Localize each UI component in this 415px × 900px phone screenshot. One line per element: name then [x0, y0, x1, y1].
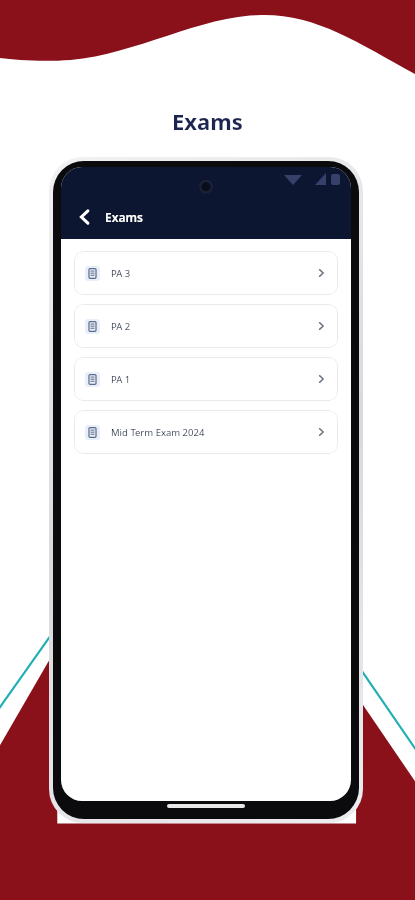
staticText: PA 2 — [111, 320, 131, 333]
button[interactable]: Back — [69, 201, 101, 233]
staticText: PA 1 — [111, 373, 131, 386]
button[interactable]: PA 2 — [74, 304, 338, 348]
staticText: Exams — [172, 106, 243, 136]
button[interactable]: PA 1 — [74, 357, 338, 401]
button[interactable]: Mid Term Exam 2024 — [74, 410, 338, 454]
staticText: Mid Term Exam 2024 — [111, 426, 205, 439]
button[interactable]: PA 3 — [74, 251, 338, 295]
staticText: PA 3 — [111, 267, 131, 280]
staticText: Exams — [105, 209, 143, 225]
